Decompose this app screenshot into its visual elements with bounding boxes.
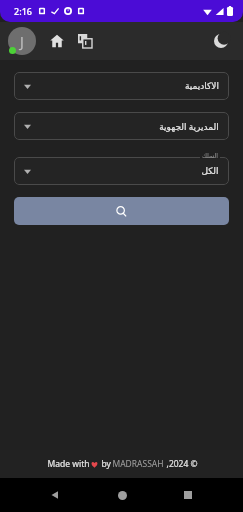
button[interactable]: الاكاديمية <box>14 72 229 100</box>
button[interactable]: المديرية الجهوية <box>14 112 229 140</box>
staticText: المديرية الجهوية <box>159 120 219 132</box>
button[interactable]: Search <box>14 197 229 225</box>
staticText: ,2024 © <box>164 458 198 470</box>
staticText: J <box>20 32 24 51</box>
staticText: 2:16 <box>14 5 32 17</box>
staticText: الكل <box>201 166 219 176</box>
button[interactable]: Recent apps <box>177 484 199 506</box>
staticText: Made with <box>46 458 91 470</box>
staticText: by <box>98 458 112 470</box>
button[interactable]: الكل <box>14 157 229 185</box>
staticText: الاكاديمية <box>185 81 219 91</box>
button[interactable]: Toggle dark mode <box>209 29 233 53</box>
button[interactable]: Profile <box>8 27 36 55</box>
staticText: السلك <box>202 152 218 159</box>
staticText: MADRASSAH <box>112 458 164 470</box>
button[interactable]: Back <box>44 484 66 506</box>
button[interactable]: Home <box>46 30 68 52</box>
button[interactable]: Translate <box>74 30 96 52</box>
button[interactable]: Home <box>111 484 133 506</box>
